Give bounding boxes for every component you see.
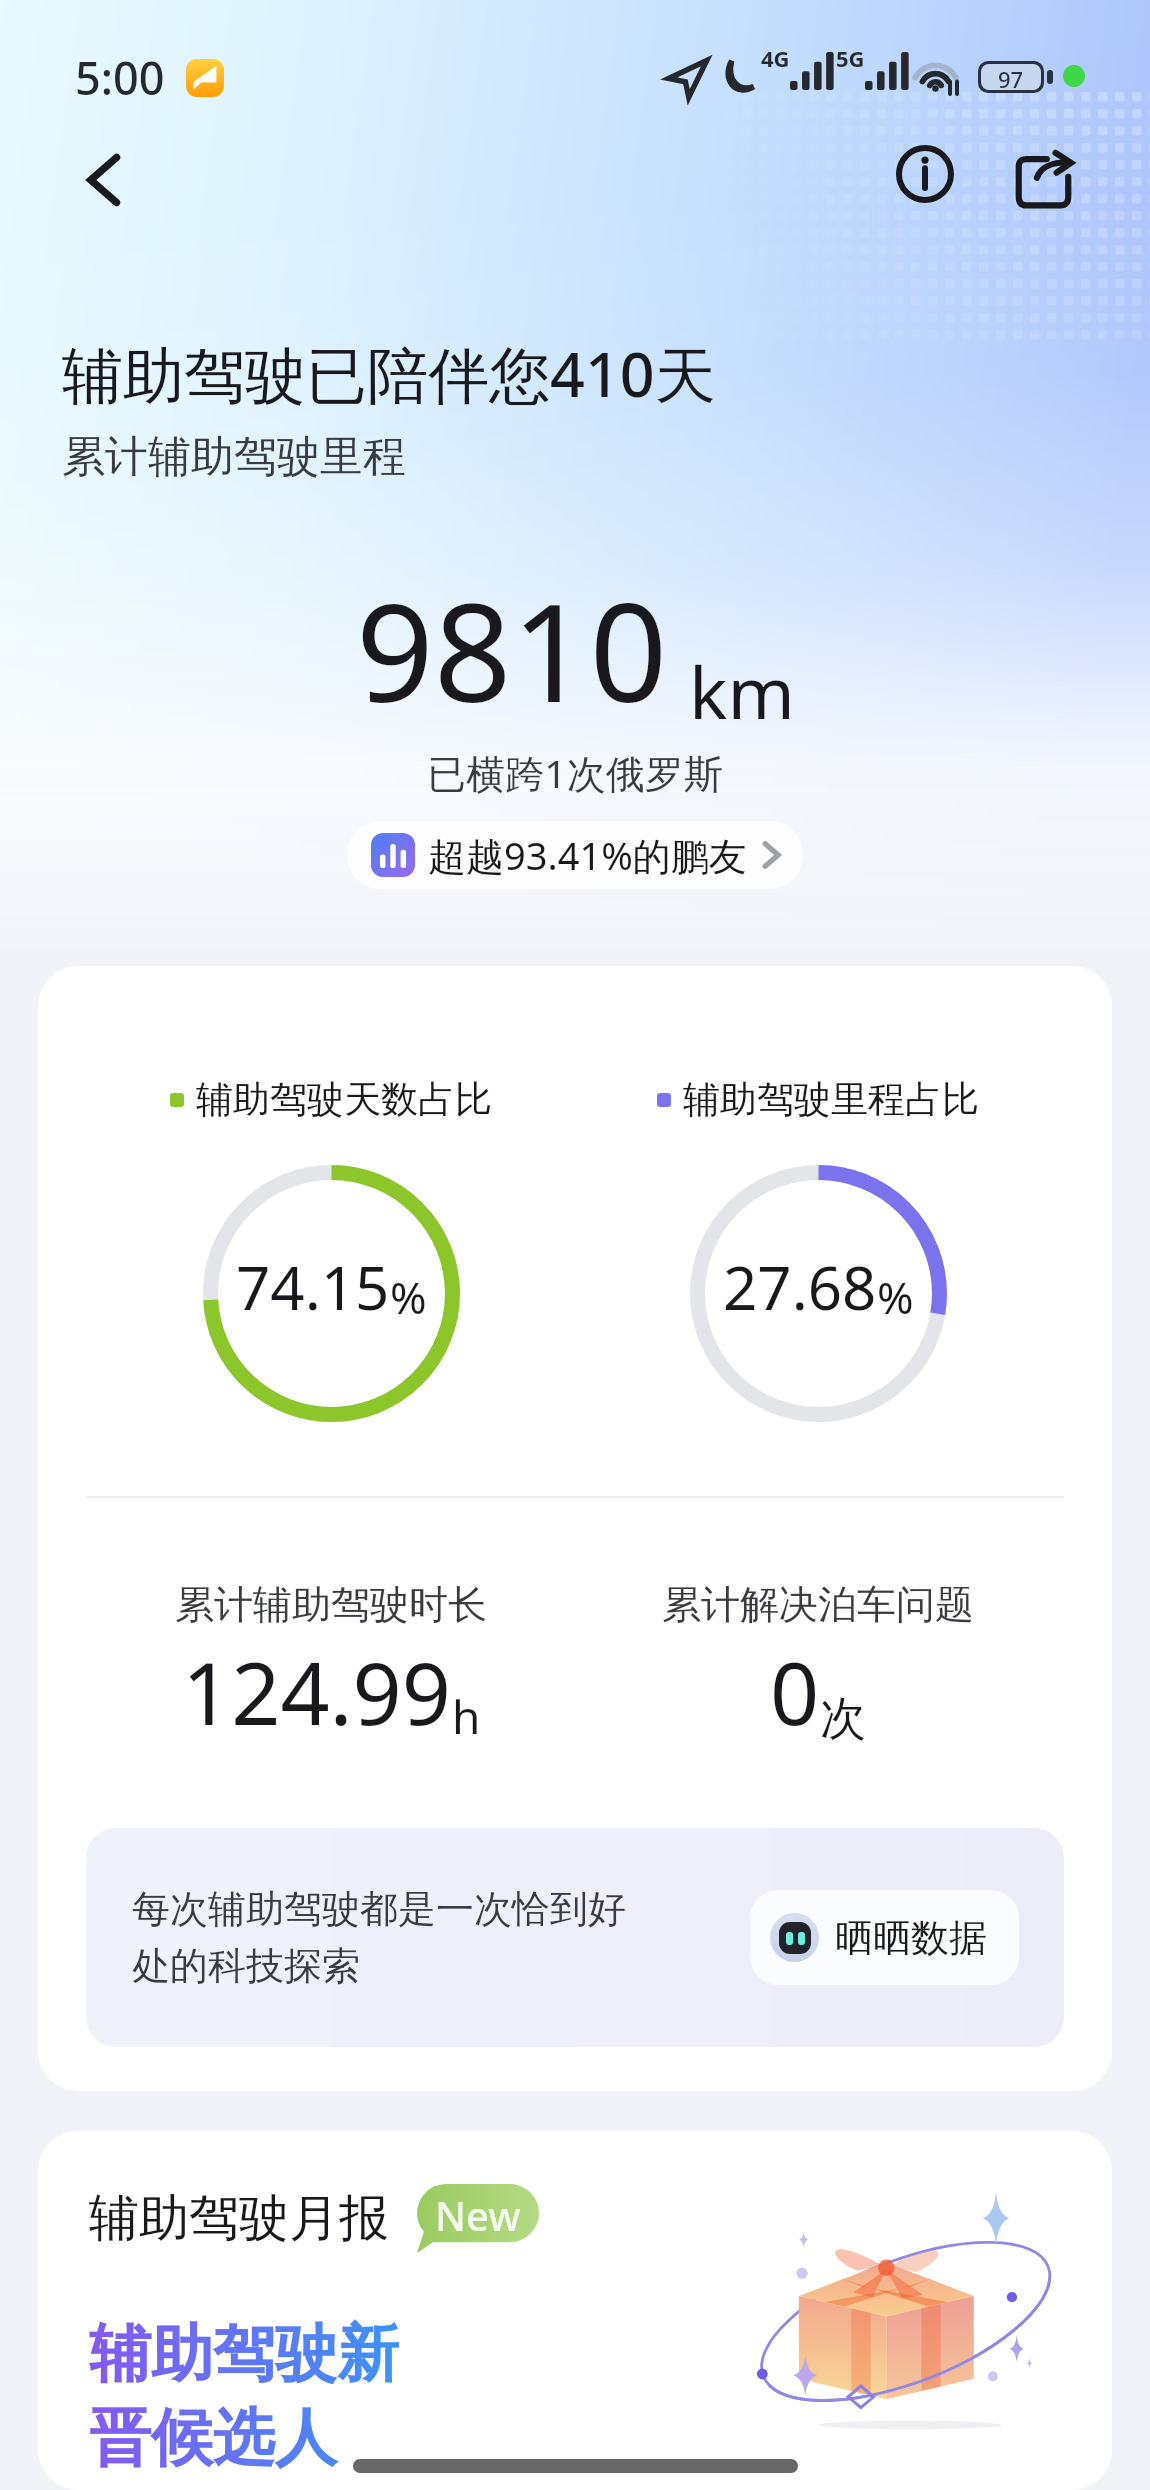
staticText: 0 bbox=[770, 1633, 820, 1750]
staticText: 27.68 bbox=[723, 1246, 877, 1328]
staticText: 97 bbox=[998, 64, 1024, 90]
staticText: New bbox=[435, 2188, 521, 2242]
staticText: 每次辅助驾驶都是一次恰到好 处的科技探索 bbox=[132, 1885, 626, 1990]
staticText: 辅助驾驶天数占比 bbox=[196, 1076, 492, 1123]
button[interactable]: Share bbox=[998, 137, 1088, 227]
staticText: h bbox=[452, 1685, 481, 1748]
staticText: 9810 bbox=[356, 557, 668, 742]
staticText: 5G bbox=[836, 43, 865, 73]
staticText: % bbox=[390, 1267, 427, 1327]
staticText: 辅助驾驶已陪伴您410天 bbox=[62, 332, 716, 415]
staticText: 辅助驾驶新 晋候选人 bbox=[89, 2315, 399, 2477]
button[interactable]: Info bbox=[880, 129, 970, 219]
button[interactable]: Back bbox=[43, 123, 163, 237]
staticText: 辅助驾驶里程占比 bbox=[683, 1076, 979, 1123]
button[interactable]: 晒晒数据 bbox=[750, 1890, 1019, 1985]
staticText: % bbox=[877, 1267, 914, 1327]
staticText: 4G bbox=[761, 43, 790, 73]
staticText: 5:00 bbox=[75, 47, 165, 108]
staticText: 124.99 bbox=[182, 1633, 452, 1750]
staticText: 已横跨1次俄罗斯 bbox=[0, 746, 1150, 799]
staticText: 晒晒数据 bbox=[835, 1914, 987, 1962]
staticText: 74.15 bbox=[236, 1246, 390, 1328]
staticText: 次 bbox=[820, 1690, 866, 1748]
staticText: 辅助驾驶月报 bbox=[89, 2187, 389, 2250]
button[interactable]: 超越93.41%的鹏友 bbox=[347, 821, 803, 889]
staticText: 累计辅助驾驶时长 bbox=[175, 1580, 487, 1629]
staticText: 累计解决泊车问题 bbox=[662, 1580, 974, 1629]
button[interactable]: 辅助驾驶月报 bbox=[38, 2131, 1112, 2490]
staticText: km bbox=[689, 642, 795, 740]
staticText: 累计辅助驾驶里程 bbox=[62, 430, 406, 484]
staticText: 超越93.41%的鹏友 bbox=[428, 829, 747, 881]
